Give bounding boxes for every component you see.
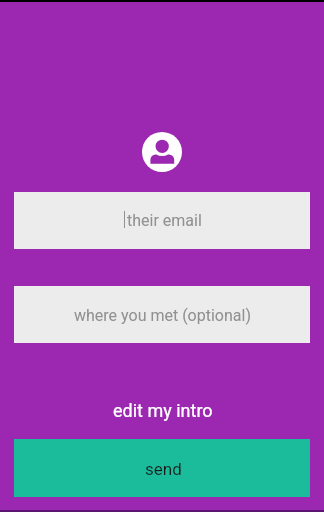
button[interactable]: edit my intro bbox=[107, 395, 219, 425]
button[interactable]: where you met (optional) bbox=[14, 286, 310, 343]
staticText: their email bbox=[127, 211, 202, 230]
button[interactable]: Choose contact photo bbox=[142, 132, 182, 172]
button[interactable]: send bbox=[14, 439, 310, 497]
button[interactable]: their email bbox=[14, 192, 310, 249]
staticText: send bbox=[145, 459, 182, 479]
staticText: edit my intro bbox=[113, 400, 213, 421]
staticText: where you met (optional) bbox=[74, 306, 251, 325]
